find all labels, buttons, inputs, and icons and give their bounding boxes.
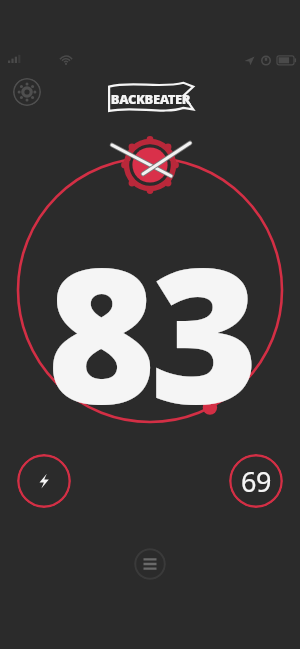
button[interactable]: 69	[229, 454, 283, 508]
button[interactable]: Settings	[13, 78, 41, 106]
staticText: 69	[241, 463, 271, 500]
button[interactable]: Menu	[134, 548, 166, 580]
staticText: BACKBEATER	[104, 90, 197, 128]
staticText: 83	[47, 204, 253, 457]
button[interactable]: Tap tempo	[17, 454, 71, 508]
